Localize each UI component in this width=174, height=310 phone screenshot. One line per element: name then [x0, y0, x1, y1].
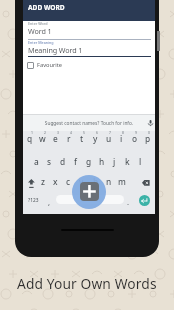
button[interactable]	[56, 195, 124, 204]
staticText: a	[34, 156, 39, 167]
staticText: g	[86, 156, 92, 167]
staticText: 3	[57, 130, 59, 135]
staticText: b	[93, 176, 99, 187]
button[interactable]	[28, 179, 35, 188]
staticText: h	[99, 156, 105, 167]
staticText: t	[80, 133, 84, 144]
staticText: z	[41, 176, 45, 187]
staticText: 2	[44, 130, 46, 135]
staticText: i	[120, 133, 123, 144]
staticText: Suggest contact names? Touch for info.	[23, 120, 155, 127]
staticText: e	[53, 133, 58, 144]
button[interactable]	[142, 180, 150, 186]
button[interactable]: Word 1	[23, 0, 47, 10]
staticText: j	[113, 156, 116, 167]
staticText: m	[118, 176, 126, 187]
staticText: 5	[83, 130, 85, 135]
staticText: n	[106, 176, 112, 187]
staticText: p	[145, 133, 151, 144]
button[interactable]	[139, 195, 150, 206]
staticText: 7	[109, 130, 111, 135]
staticText: Add Your Own Words	[17, 274, 157, 293]
staticText: f	[74, 156, 77, 167]
staticText: d	[60, 156, 66, 167]
button[interactable]: Meaning Word 1	[23, 0, 78, 10]
staticText: v	[79, 176, 84, 187]
staticText: w	[39, 133, 46, 144]
button[interactable]	[23, 115, 155, 131]
staticText: l	[139, 156, 142, 167]
button[interactable]: ?123	[23, 0, 34, 7]
staticText: ADD WORD	[28, 3, 65, 12]
staticText: Enter Word	[28, 21, 48, 26]
staticText: 4	[70, 130, 72, 135]
staticText: q	[27, 133, 33, 144]
staticText: Enter Meaning	[28, 40, 54, 45]
staticText: .	[127, 197, 130, 207]
staticText: 0	[148, 130, 150, 135]
staticText: Favourite	[37, 61, 63, 69]
staticText: r	[67, 133, 71, 144]
staticText: 9	[135, 130, 137, 135]
staticText: ,	[48, 197, 51, 207]
button[interactable]	[27, 62, 34, 69]
staticText: o	[132, 133, 138, 144]
staticText: u	[106, 133, 112, 144]
staticText: 1	[31, 130, 33, 135]
staticText: 6	[96, 130, 98, 135]
button[interactable]	[80, 182, 99, 201]
staticText: c	[66, 176, 71, 187]
staticText: y	[93, 133, 98, 144]
button[interactable]	[23, 0, 155, 21]
button[interactable]	[148, 120, 153, 127]
staticText: 8	[122, 130, 124, 135]
staticText: s	[47, 156, 52, 167]
staticText: x	[53, 176, 58, 187]
staticText: k	[125, 156, 130, 167]
